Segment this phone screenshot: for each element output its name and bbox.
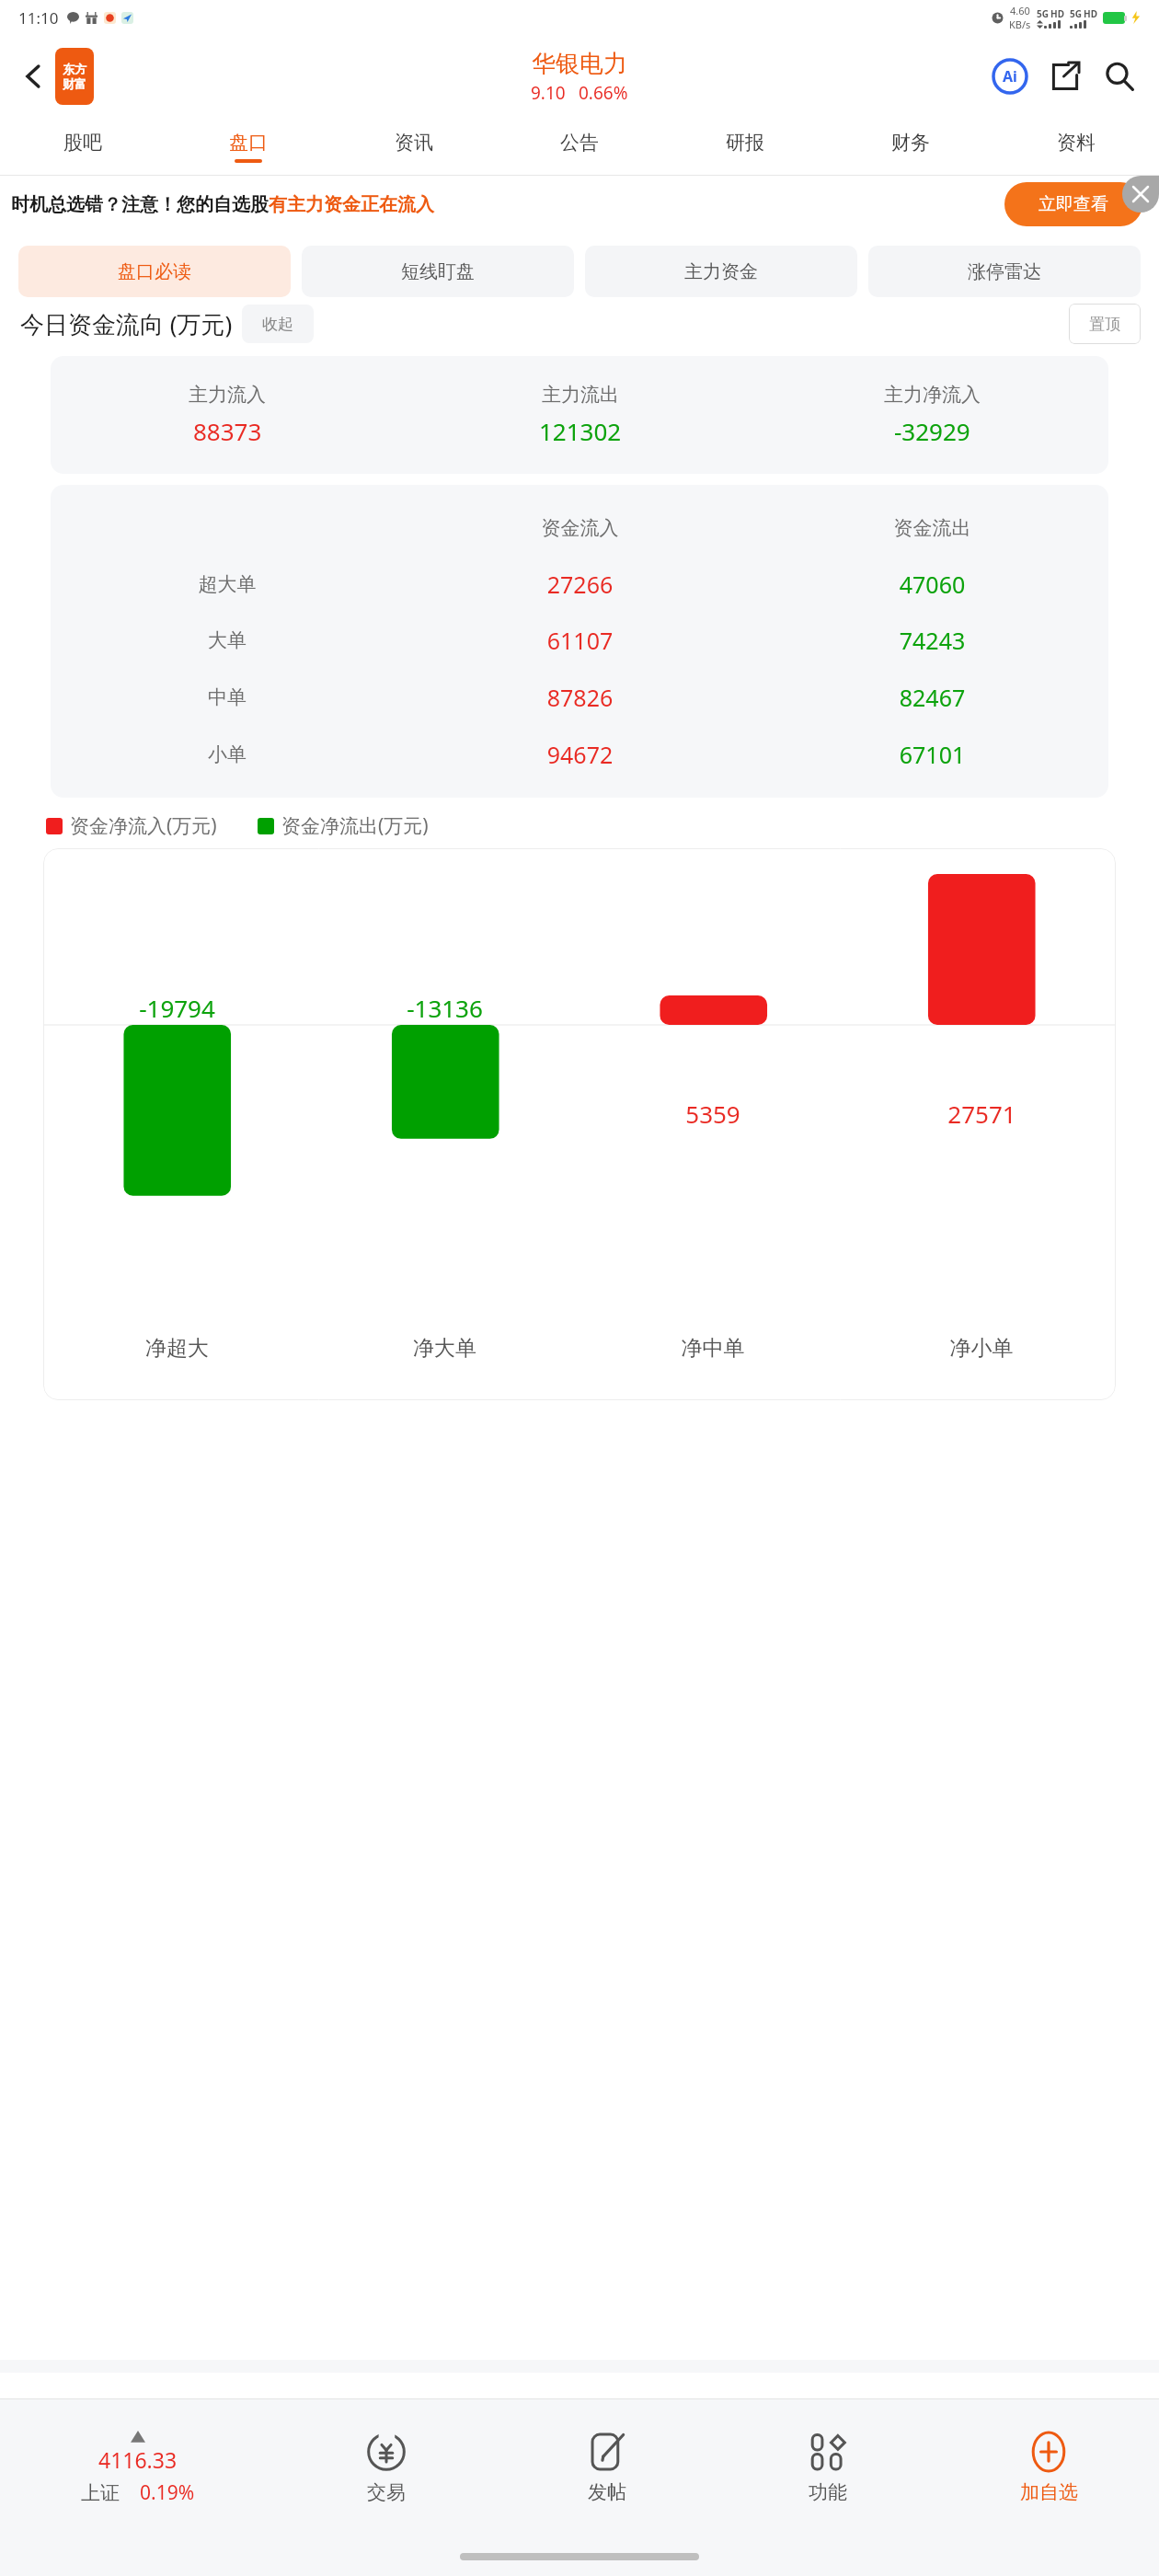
staticText: 27266 — [404, 569, 756, 600]
staticText: 主力净流入 — [884, 383, 981, 407]
button[interactable]: Back — [13, 55, 55, 98]
staticText: 9.10 — [531, 81, 566, 105]
staticText: 11:10 — [18, 7, 59, 29]
button[interactable]: 股吧 — [0, 118, 166, 175]
staticText: 4.60 — [1010, 4, 1030, 17]
staticText: 上证 — [81, 2481, 120, 2505]
button[interactable]: 立即查看 — [1004, 182, 1142, 226]
staticText: 功能 — [809, 2480, 847, 2504]
staticText: 净中单 — [579, 1335, 847, 1362]
staticText: 中单 — [51, 685, 404, 709]
staticText: 盘口必读 — [118, 260, 191, 283]
staticText: 资金净流入(万元) — [70, 812, 217, 839]
staticText: 大单 — [51, 628, 404, 652]
staticText: 公告 — [560, 131, 599, 155]
staticText: 47060 — [756, 569, 1108, 600]
button[interactable]: 财务 — [828, 118, 993, 175]
button[interactable]: Share — [1045, 56, 1085, 97]
staticText: 主力流入 — [189, 383, 266, 407]
button[interactable]: 东方 — [55, 48, 94, 105]
button[interactable]: 收起 — [242, 305, 314, 343]
button[interactable]: 盘口必读 — [18, 246, 291, 297]
staticText: HD — [1084, 7, 1097, 20]
button[interactable]: Search — [1098, 55, 1141, 98]
staticText: 0.66% — [579, 81, 628, 105]
button[interactable]: 资金流入 — [51, 485, 1108, 798]
staticText: 0.19% — [140, 2479, 195, 2506]
staticText: 净超大 — [43, 1335, 311, 1362]
staticText: 今日资金流向 (万元) — [20, 307, 233, 340]
button[interactable]: 交易 — [276, 2399, 497, 2537]
staticText: 东方 — [63, 62, 86, 76]
button[interactable]: 发帖 — [497, 2399, 717, 2537]
button[interactable]: AI assistant — [990, 56, 1030, 97]
staticText: 净小单 — [847, 1335, 1116, 1362]
button[interactable]: 加自选 — [938, 2399, 1159, 2537]
button[interactable]: 资讯 — [331, 118, 497, 175]
staticText: 61107 — [404, 625, 756, 656]
staticText: -32929 — [894, 415, 970, 447]
staticText: KB/s — [1009, 17, 1031, 31]
button[interactable]: 涨停雷达 — [868, 246, 1141, 297]
staticText: 收起 — [262, 315, 293, 334]
staticText: 加自选 — [1020, 2480, 1078, 2504]
staticText: HD — [1050, 7, 1064, 20]
staticText: 财富 — [63, 76, 86, 91]
staticText: -13136 — [407, 992, 483, 1024]
staticText: 资金净流出(万元) — [281, 812, 429, 839]
button[interactable]: 主力流入 — [51, 356, 1108, 474]
staticText: 盘口 — [229, 131, 268, 155]
button[interactable]: 4116.33 — [0, 2399, 276, 2537]
staticText: 研报 — [726, 131, 764, 155]
staticText: 87826 — [404, 682, 756, 713]
staticText: 5359 — [685, 1098, 740, 1130]
staticText: 净大单 — [311, 1335, 579, 1362]
staticText: 置顶 — [1089, 315, 1120, 334]
staticText: 交易 — [367, 2480, 406, 2504]
staticText: 主力流出 — [542, 383, 619, 407]
staticText: 资讯 — [395, 131, 433, 155]
staticText: 27571 — [947, 1098, 1016, 1130]
staticText: 资金流入 — [404, 516, 756, 540]
staticText: 94672 — [404, 739, 756, 770]
staticText: 发帖 — [588, 2480, 626, 2504]
button[interactable]: 置顶 — [1069, 304, 1141, 344]
staticText: 华银电力 — [532, 49, 627, 79]
staticText: 立即查看 — [1039, 193, 1108, 215]
button[interactable]: 研报 — [662, 118, 828, 175]
staticText: 67101 — [756, 739, 1108, 770]
staticText: 资金流出 — [756, 516, 1108, 540]
staticText: 82467 — [756, 682, 1108, 713]
staticText: 5G — [1070, 7, 1082, 20]
button[interactable]: 公告 — [497, 118, 662, 175]
staticText: 涨停雷达 — [968, 260, 1041, 283]
staticText: Ai — [1003, 66, 1017, 86]
staticText: 资料 — [1057, 131, 1096, 155]
button[interactable]: 资料 — [993, 118, 1159, 175]
button[interactable]: 盘口 — [166, 118, 331, 175]
staticText: 5G — [1037, 7, 1049, 20]
staticText: 短线盯盘 — [401, 260, 475, 283]
button[interactable]: 功能 — [717, 2399, 938, 2537]
staticText: 4116.33 — [98, 2445, 178, 2474]
button[interactable]: Close ad — [1122, 176, 1159, 213]
staticText: 超大单 — [51, 572, 404, 596]
staticText: 小单 — [51, 742, 404, 766]
button[interactable]: 时机总选错？注意！您的自选股 — [0, 176, 1159, 233]
button[interactable]: 主力资金 — [585, 246, 857, 297]
staticText: 88373 — [193, 415, 262, 447]
button[interactable]: -19794 — [43, 848, 1116, 1400]
staticText: 股吧 — [63, 131, 102, 155]
staticText: 有主力资金正在流入 — [269, 193, 434, 216]
staticText: 主力资金 — [684, 260, 758, 283]
staticText: -19794 — [139, 992, 215, 1024]
staticText: 121302 — [539, 415, 622, 447]
staticText: 时机总选错？注意！您的自选股 — [11, 193, 269, 216]
button[interactable]: 短线盯盘 — [302, 246, 574, 297]
staticText: 财务 — [891, 131, 930, 155]
staticText: 74243 — [756, 625, 1108, 656]
